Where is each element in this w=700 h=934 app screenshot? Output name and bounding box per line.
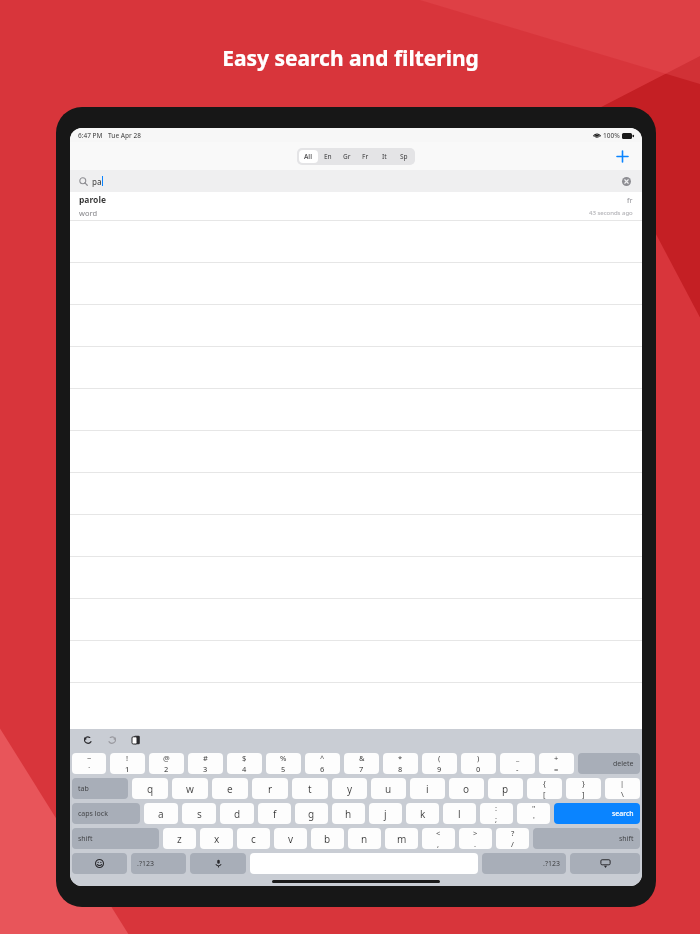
staticText: En — [324, 152, 332, 161]
button[interactable]: r — [252, 778, 288, 799]
button[interactable]: s — [182, 803, 216, 824]
button[interactable]: Sp — [394, 150, 413, 163]
staticText: 2 — [164, 764, 169, 774]
button[interactable]: a — [144, 803, 178, 824]
button[interactable]: f — [258, 803, 291, 824]
button[interactable]: shift — [533, 828, 640, 849]
button[interactable]: o — [449, 778, 484, 799]
button[interactable]: It — [375, 150, 394, 163]
button[interactable]: : — [480, 803, 513, 824]
staticText: = — [554, 764, 559, 774]
button[interactable]: v — [274, 828, 307, 849]
button[interactable]: parole — [70, 192, 642, 220]
button[interactable]: tab — [72, 778, 128, 799]
button[interactable]: } — [566, 778, 601, 799]
button[interactable]: ? — [496, 828, 529, 849]
button[interactable] — [570, 853, 640, 874]
button[interactable]: < — [422, 828, 455, 849]
button[interactable]: $ — [227, 753, 262, 774]
button[interactable]: l — [443, 803, 476, 824]
staticText: word — [79, 208, 97, 218]
button[interactable]: p — [488, 778, 523, 799]
button[interactable]: Clear search — [619, 174, 633, 188]
button[interactable]: .?123 — [131, 853, 186, 874]
button[interactable]: pa — [70, 170, 642, 192]
button[interactable]: Gr — [337, 150, 356, 163]
staticText: { — [543, 778, 546, 788]
button[interactable]: Paste — [128, 732, 144, 748]
button[interactable]: Undo — [80, 732, 96, 748]
button[interactable]: caps lock — [72, 803, 140, 824]
button[interactable]: ! — [110, 753, 145, 774]
staticText: ' — [533, 814, 535, 824]
button[interactable]: search — [554, 803, 640, 824]
button[interactable]: { — [527, 778, 562, 799]
button[interactable]: d — [220, 803, 254, 824]
button[interactable]: w — [172, 778, 208, 799]
button[interactable]: * — [383, 753, 418, 774]
button[interactable]: m — [385, 828, 418, 849]
button[interactable]: & — [344, 753, 379, 774]
button[interactable]: En — [318, 150, 337, 163]
button[interactable]: ^ — [305, 753, 340, 774]
button[interactable]: ) — [461, 753, 496, 774]
staticText: Tue Apr 28 — [108, 131, 141, 140]
button[interactable]: t — [292, 778, 328, 799]
button[interactable]: @ — [149, 753, 184, 774]
staticText: parole — [79, 194, 107, 206]
button[interactable]: z — [163, 828, 196, 849]
button[interactable]: Add — [612, 146, 632, 166]
staticText: shift — [78, 834, 93, 844]
button[interactable]: k — [406, 803, 439, 824]
button[interactable]: i — [410, 778, 445, 799]
button[interactable]: c — [237, 828, 270, 849]
button[interactable]: ~ — [72, 753, 106, 774]
button[interactable]: shift — [72, 828, 159, 849]
staticText: 100% — [603, 131, 620, 140]
button[interactable]: ( — [422, 753, 457, 774]
button[interactable] — [72, 853, 127, 874]
button[interactable]: " — [517, 803, 550, 824]
button[interactable]: j — [369, 803, 402, 824]
button[interactable]: + — [539, 753, 574, 774]
staticText: ^ — [320, 753, 325, 763]
button[interactable]: h — [332, 803, 365, 824]
button[interactable]: delete — [578, 753, 640, 774]
button[interactable]: b — [311, 828, 344, 849]
staticText: # — [203, 753, 208, 763]
button[interactable]: Redo — [104, 732, 120, 748]
button[interactable]: Fr — [356, 150, 375, 163]
staticText: l — [458, 807, 461, 821]
button[interactable]: # — [188, 753, 223, 774]
button[interactable]: All — [299, 150, 318, 163]
button[interactable]: | — [605, 778, 640, 799]
staticText: 5 — [281, 764, 286, 774]
staticText: & — [359, 753, 365, 763]
button[interactable]: e — [212, 778, 248, 799]
button[interactable]: g — [295, 803, 328, 824]
button[interactable]: x — [200, 828, 233, 849]
button[interactable]: n — [348, 828, 381, 849]
button[interactable]: u — [371, 778, 406, 799]
button[interactable]: .?123 — [482, 853, 566, 874]
button[interactable]: y — [332, 778, 367, 799]
staticText: caps lock — [78, 809, 108, 819]
button[interactable] — [190, 853, 246, 874]
button[interactable]: q — [132, 778, 168, 799]
button[interactable]: > — [459, 828, 492, 849]
button[interactable]: % — [266, 753, 301, 774]
button[interactable]: _ — [500, 753, 535, 774]
staticText: Easy search and filtering — [222, 44, 479, 73]
